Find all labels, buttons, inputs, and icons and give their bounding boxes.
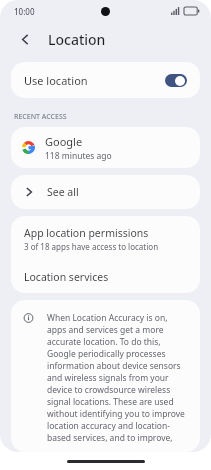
- button[interactable]: See all: [11, 175, 200, 209]
- staticText: 118 minutes ago: [45, 150, 112, 162]
- button[interactable]: Back: [12, 26, 38, 52]
- staticText: Location services: [24, 270, 109, 284]
- staticText: Use location: [24, 73, 88, 88]
- staticText: Location: [48, 30, 106, 49]
- button[interactable]: Use location: [11, 62, 200, 98]
- button[interactable]: Google: [11, 127, 200, 168]
- staticText: See all: [47, 185, 79, 199]
- staticText: RECENT ACCESS: [14, 112, 67, 122]
- staticText: When Location Accuracy is on, apps and s…: [47, 312, 188, 444]
- button[interactable]: App location permissions: [11, 216, 200, 261]
- button[interactable]: Location services: [11, 261, 200, 293]
- staticText: 3 of 18 apps have access to location: [24, 241, 159, 252]
- staticText: Google: [45, 134, 83, 149]
- staticText: 10:00: [14, 6, 35, 17]
- staticText: App location permissions: [24, 226, 149, 240]
